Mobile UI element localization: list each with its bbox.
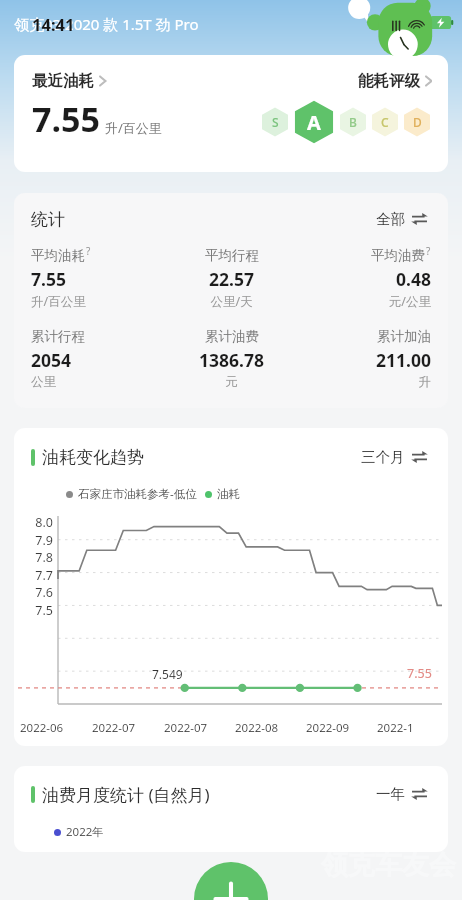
staticText: 7.55 <box>407 665 432 682</box>
staticText: 升/百公里 <box>31 293 86 310</box>
staticText: 领克03 2020 款 1.5T 劲 Pro <box>14 14 199 34</box>
staticText: 油费月度统计 (自然月) <box>42 783 210 806</box>
staticText: 2022-06 <box>20 720 92 736</box>
staticText: 三个月 <box>361 448 405 466</box>
staticText: 升 <box>418 374 431 390</box>
staticText: ? <box>426 244 431 258</box>
staticText: 7.55 <box>32 96 100 142</box>
staticText: 7.549 <box>152 666 183 682</box>
staticText: 累计行程 <box>31 328 85 345</box>
button[interactable]: 一年 <box>373 782 431 806</box>
staticText: 最近油耗 <box>32 71 94 91</box>
staticText: 平均行程 <box>205 247 259 264</box>
staticText: 元/公里 <box>388 293 431 310</box>
staticText: 2022-1 <box>377 720 448 736</box>
staticText: 领克车友会 <box>321 848 456 882</box>
staticText: ? <box>86 244 91 258</box>
staticText: 14:41 <box>32 13 75 35</box>
staticText: 2054 <box>31 348 72 372</box>
staticText: 公里 <box>31 374 56 390</box>
button[interactable]: 添加加油记录 <box>194 862 268 900</box>
staticText: 公里/天 <box>210 293 253 310</box>
staticText: 2022-07 <box>164 720 235 736</box>
staticText: 平均油费 <box>371 247 425 264</box>
staticText: 7.6 <box>21 584 53 601</box>
staticText: B <box>349 114 357 130</box>
staticText: 2022年 <box>66 824 104 840</box>
staticText: C <box>381 114 389 130</box>
staticText: 能耗评级 <box>358 71 420 91</box>
staticText: 2022-07 <box>92 720 164 736</box>
staticText: 平均油耗 <box>31 247 85 264</box>
staticText: D <box>413 114 422 130</box>
staticText: 7.55 <box>31 267 66 291</box>
staticText: 2022-09 <box>306 720 377 736</box>
button[interactable]: 能耗评级 <box>358 71 432 91</box>
button[interactable]: 最近油耗 <box>14 55 172 148</box>
staticText: 211.00 <box>376 348 431 372</box>
staticText: 累计油费 <box>205 328 259 345</box>
staticText: 8.0 <box>21 514 53 531</box>
staticText: 一年 <box>376 785 405 803</box>
button[interactable]: 全部 <box>373 207 431 231</box>
button[interactable]: 三个月 <box>358 445 431 469</box>
staticText: 7.7 <box>21 567 53 584</box>
staticText: 累计加油 <box>377 328 431 345</box>
staticText: 1386.78 <box>199 348 264 372</box>
staticText: 全部 <box>376 210 405 228</box>
staticText: 2022-08 <box>235 720 306 736</box>
staticText: 元 <box>225 374 238 390</box>
staticText: 7.5 <box>21 602 53 619</box>
staticText: 统计 <box>31 209 65 230</box>
staticText: 0.48 <box>396 267 431 291</box>
staticText: 7.9 <box>21 532 53 549</box>
staticText: 升/百公里 <box>105 119 162 137</box>
staticText: 22.57 <box>209 267 254 291</box>
staticText: S <box>272 114 279 130</box>
staticText: 7.8 <box>21 549 53 566</box>
staticText: 石家庄市油耗参考-低位 <box>78 486 197 502</box>
staticText: A <box>307 109 321 136</box>
staticText: 油耗变化趋势 <box>42 447 144 468</box>
staticText: 油耗 <box>217 487 240 501</box>
